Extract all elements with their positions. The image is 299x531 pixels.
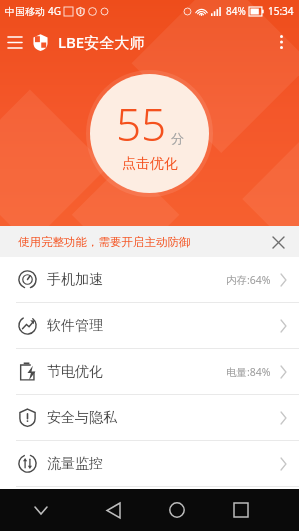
- button[interactable]: Back: [82, 489, 145, 531]
- staticText: 电量:84%: [226, 365, 271, 379]
- staticText: 安全与隐私: [47, 409, 117, 427]
- button[interactable]: 节电优化: [0, 349, 299, 394]
- button[interactable]: 使用完整功能，需要开启主动防御: [0, 226, 299, 257]
- staticText: 84%: [226, 4, 246, 18]
- button[interactable]: Recent apps: [209, 489, 273, 531]
- staticText: 流量监控: [47, 455, 103, 473]
- button[interactable]: More options: [263, 24, 299, 60]
- button[interactable]: 流量监控: [0, 441, 299, 486]
- staticText: 分: [171, 130, 184, 146]
- button[interactable]: Close: [265, 229, 291, 255]
- button[interactable]: 55: [90, 74, 209, 193]
- button[interactable]: 手机加速: [0, 257, 299, 302]
- staticText: 4G: [48, 4, 61, 18]
- staticText: 使用完整功能，需要开启主动防御: [18, 235, 191, 249]
- staticText: LBE安全大师: [58, 32, 145, 52]
- staticText: 55: [116, 94, 167, 154]
- staticText: 15:34: [268, 4, 294, 18]
- staticText: 软件管理: [47, 317, 103, 335]
- button[interactable]: 安全与隐私: [0, 395, 299, 440]
- staticText: 节电优化: [47, 363, 103, 381]
- button[interactable]: Hide navigation bar: [0, 489, 82, 531]
- staticText: 手机加速: [47, 271, 103, 289]
- button[interactable]: Menu: [0, 27, 30, 57]
- staticText: 点击优化: [122, 155, 178, 173]
- staticText: 中国移动: [5, 5, 45, 18]
- button[interactable]: 软件管理: [0, 303, 299, 348]
- button[interactable]: Home: [145, 489, 209, 531]
- staticText: 内存:64%: [226, 273, 271, 287]
